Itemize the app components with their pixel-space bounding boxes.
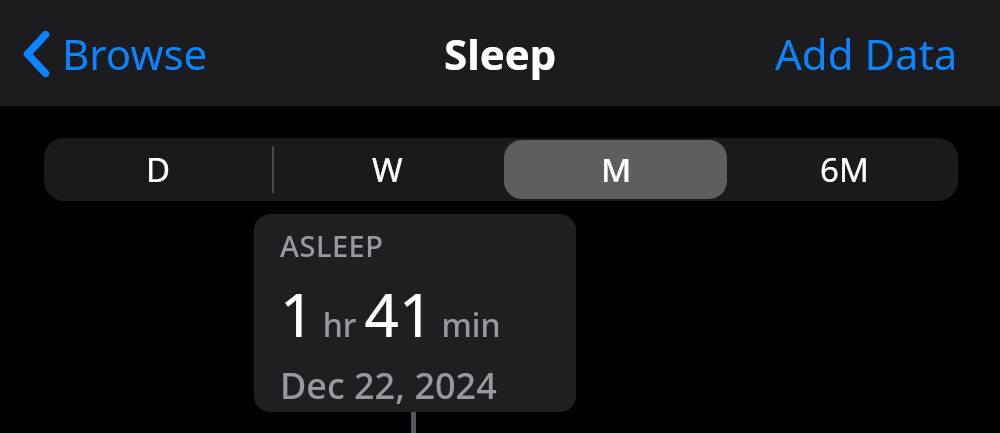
button[interactable]: Add Data — [765, 19, 968, 88]
staticText: ASLEEP — [280, 226, 384, 265]
button[interactable]: 6M — [731, 138, 958, 201]
staticText: 6M — [820, 147, 869, 192]
staticText: D — [146, 147, 171, 192]
button[interactable]: Browse — [14, 19, 218, 88]
staticText: Add Data — [775, 25, 958, 82]
staticText: M — [601, 147, 632, 192]
button[interactable]: W — [273, 138, 502, 201]
button[interactable]: M — [502, 138, 731, 201]
button[interactable]: ASLEEP — [254, 214, 576, 412]
staticText: Browse — [62, 25, 208, 82]
staticText: Dec 22, 2024 — [280, 361, 497, 410]
staticText: Sleep — [444, 25, 557, 82]
staticText: W — [372, 147, 403, 192]
staticText: 1 hr 41 min — [280, 273, 501, 355]
button[interactable]: D — [44, 138, 273, 201]
